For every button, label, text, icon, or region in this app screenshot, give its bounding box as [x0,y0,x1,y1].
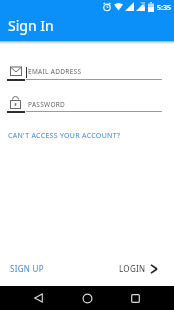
staticText: 5:35 [157,3,171,13]
button[interactable]: PASSWORD [6,93,166,114]
button[interactable]: LOGIN [112,258,166,278]
button[interactable]: SIGN UP [4,258,56,278]
staticText: PASSWORD [28,100,66,109]
staticText: Sign In [8,16,54,35]
button[interactable] [115,286,155,310]
staticText: SIGN UP [10,263,44,274]
staticText: EMAIL ADDRESS [28,67,82,76]
button[interactable] [67,286,107,310]
staticText: CAN'T ACCESS YOUR ACCOUNT? [8,131,121,141]
button[interactable]: CAN'T ACCESS YOUR ACCOUNT? [6,128,126,143]
button[interactable]: EMAIL ADDRESS [6,61,166,82]
button[interactable] [18,286,58,310]
staticText: LOGIN [119,263,146,274]
